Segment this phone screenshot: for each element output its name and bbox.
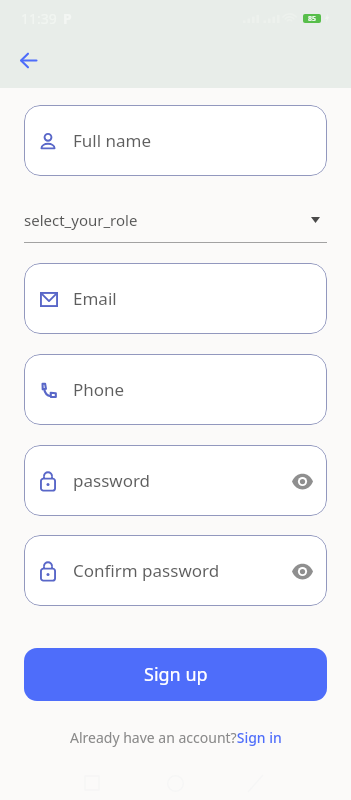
button[interactable]: Email bbox=[24, 263, 327, 334]
staticText: 85 bbox=[308, 14, 317, 23]
staticText: Sign up bbox=[144, 662, 208, 687]
button[interactable]: Back bbox=[12, 44, 45, 77]
staticText: Email bbox=[73, 287, 117, 310]
staticText: Phone bbox=[73, 378, 125, 401]
staticText: select_your_role bbox=[24, 210, 138, 230]
staticText: Already have an account?Sign in bbox=[70, 728, 282, 747]
button[interactable]: select_your_role bbox=[24, 197, 327, 242]
button[interactable]: Show password bbox=[287, 556, 317, 586]
staticText: Confirm password bbox=[73, 559, 220, 582]
button[interactable]: Sign up bbox=[24, 648, 327, 701]
button[interactable]: Confirm password bbox=[24, 535, 327, 606]
staticText: Full name bbox=[73, 129, 152, 152]
staticText: P bbox=[63, 9, 72, 28]
button[interactable]: password bbox=[24, 445, 327, 516]
button[interactable]: Already have an account?Sign in bbox=[70, 728, 282, 747]
staticText: password bbox=[73, 469, 151, 492]
button[interactable]: Full name bbox=[24, 105, 327, 176]
button[interactable]: Show password bbox=[287, 466, 317, 496]
button[interactable]: Phone bbox=[24, 354, 327, 425]
